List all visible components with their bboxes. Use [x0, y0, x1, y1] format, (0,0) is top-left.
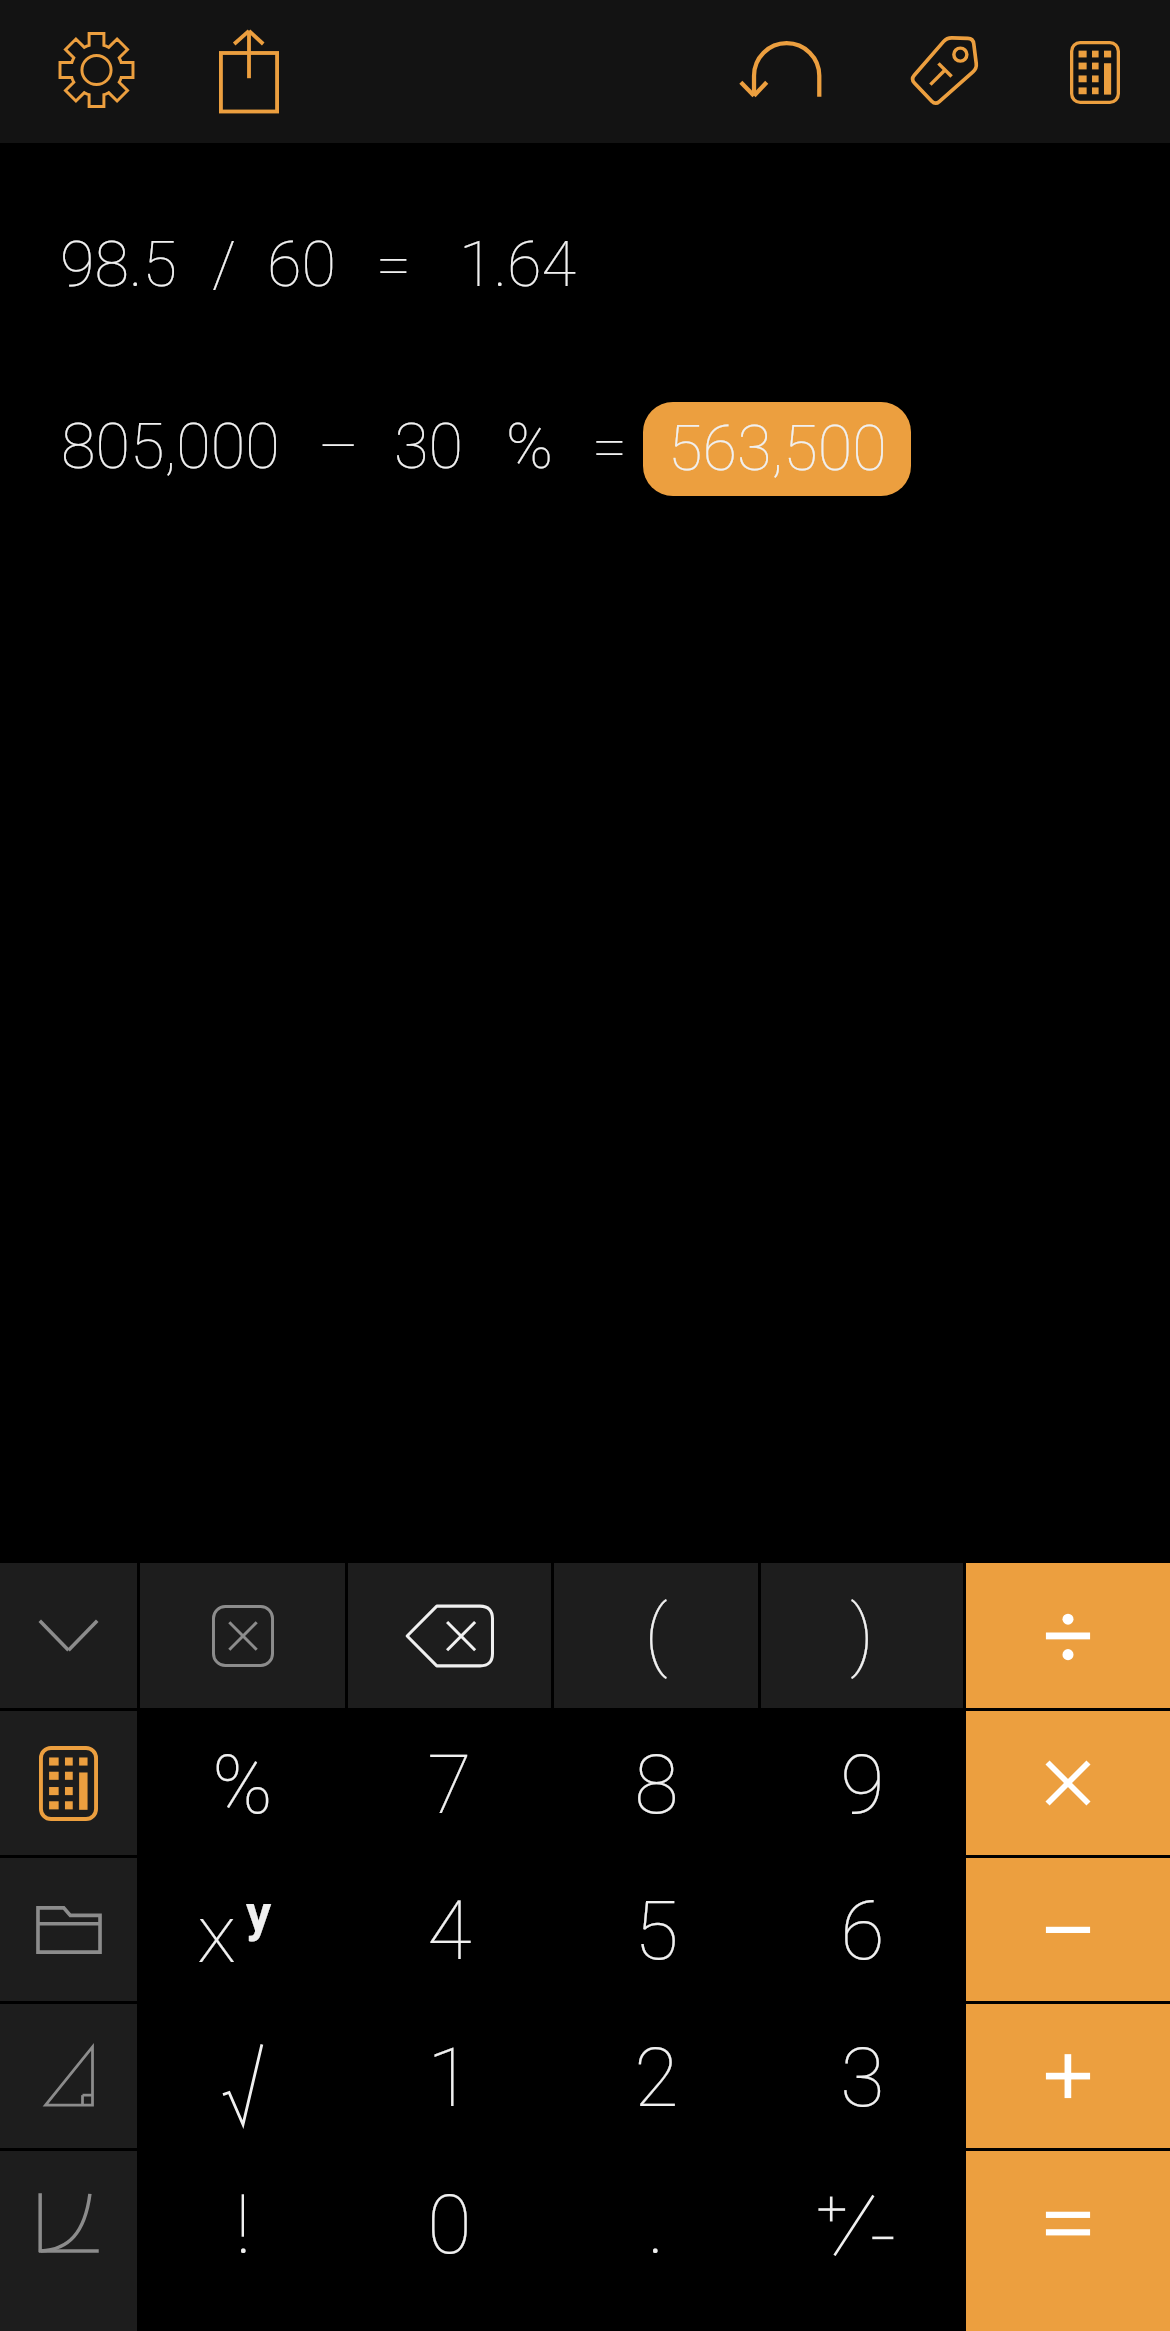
staticText: 5	[634, 1884, 679, 1979]
button[interactable]: 8	[554, 1711, 758, 1855]
staticText: 7	[427, 1738, 472, 1833]
button[interactable]: Collapse keypad	[0, 1563, 137, 1708]
staticText: 3	[840, 2031, 885, 2126]
button[interactable]: Undo	[726, 14, 836, 126]
button[interactable]: )	[761, 1563, 963, 1708]
button[interactable]: Square root	[140, 2004, 345, 2148]
staticText: x	[197, 1886, 237, 1982]
button[interactable]: 4	[348, 1858, 551, 2001]
button[interactable]: 2	[554, 2004, 758, 2148]
button[interactable]: (	[554, 1563, 758, 1708]
staticText: 1.64	[459, 228, 576, 302]
button[interactable]: .	[554, 2151, 758, 2331]
button[interactable]: Graph	[0, 2151, 137, 2331]
staticText: )	[850, 1589, 874, 1680]
staticText: 805,000	[61, 410, 280, 484]
staticText: 1	[427, 2031, 472, 2126]
button[interactable]: 7	[348, 1711, 551, 1855]
staticText: 4	[427, 1884, 472, 1979]
staticText: 6	[840, 1884, 885, 1979]
button[interactable]: 5	[554, 1858, 758, 2001]
button[interactable]: Plus	[966, 2004, 1170, 2148]
staticText: 8	[634, 1738, 679, 1833]
button[interactable]: Calculator	[1040, 16, 1150, 128]
staticText: =	[592, 410, 628, 484]
staticText: =	[376, 228, 412, 302]
button[interactable]: 563,500	[643, 402, 911, 496]
button[interactable]: %	[140, 1711, 345, 1855]
staticText: –	[318, 410, 359, 484]
button[interactable]: Tag	[888, 15, 998, 127]
button[interactable]: Divide	[966, 1563, 1170, 1708]
button[interactable]: 9	[761, 1711, 963, 1855]
button[interactable]: Plus minus	[761, 2151, 963, 2331]
staticText: 30	[394, 410, 463, 484]
button[interactable]: Share	[194, 14, 304, 126]
staticText: !	[235, 2178, 251, 2273]
button[interactable]: 1	[348, 2004, 551, 2148]
button[interactable]: Settings	[41, 14, 151, 126]
button[interactable]: x to the power of y	[140, 1858, 345, 2001]
button[interactable]: 0	[348, 2151, 551, 2331]
button[interactable]: Minus	[966, 1858, 1170, 2001]
staticText: 98.5	[60, 228, 177, 302]
button[interactable]: Equals	[966, 2151, 1170, 2331]
button[interactable]: Calculator	[0, 1711, 137, 1855]
staticText: y	[246, 1885, 272, 1944]
staticText: 0	[427, 2178, 472, 2273]
button[interactable]: !	[140, 2151, 345, 2331]
staticText: 563,500	[668, 412, 887, 486]
staticText: .	[647, 2178, 665, 2273]
staticText: %	[212, 1738, 273, 1833]
staticText: %	[506, 410, 553, 484]
button[interactable]: 3	[761, 2004, 963, 2148]
button[interactable]: Saved	[0, 1858, 137, 2001]
staticText: (	[644, 1589, 668, 1680]
button[interactable]: Clear	[140, 1563, 345, 1708]
staticText: 60	[267, 228, 336, 302]
staticText: 9	[840, 1738, 885, 1833]
button[interactable]: Multiply	[966, 1711, 1170, 1855]
staticText: /	[212, 228, 237, 302]
button[interactable]: Geometry	[0, 2004, 137, 2148]
button[interactable]: Backspace	[348, 1563, 551, 1708]
staticText: 2	[634, 2031, 679, 2126]
button[interactable]: 6	[761, 1858, 963, 2001]
